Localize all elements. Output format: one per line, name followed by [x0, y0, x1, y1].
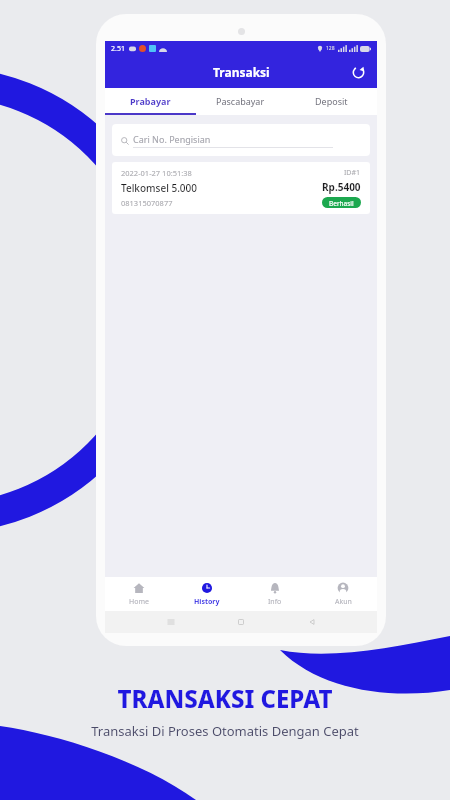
staticText: Telkomsel 5.000 [121, 181, 198, 195]
button[interactable]: Prabayar [105, 88, 195, 113]
button[interactable]: Refresh [347, 61, 369, 83]
staticText: Pascabayar [216, 95, 265, 107]
button[interactable]: 2022-01-27 10:51:38 [112, 162, 370, 214]
staticText: Home [129, 597, 149, 607]
button[interactable]: Deposit [286, 88, 377, 113]
button[interactable]: Info [241, 577, 309, 611]
staticText: ID#1 [344, 168, 361, 178]
button[interactable]: Cari No. Pengisian [112, 124, 370, 156]
staticText: TRANSAKSI CEPAT [117, 682, 333, 715]
button[interactable]: History [173, 577, 241, 611]
staticText: History [194, 597, 220, 607]
staticText: Rp.5400 [322, 180, 361, 194]
button[interactable]: Akun [309, 577, 377, 611]
staticText: 2022-01-27 10:51:38 [121, 168, 192, 178]
staticText: Deposit [315, 95, 348, 107]
staticText: 128 [326, 45, 335, 52]
staticText: Transaksi Di Proses Otomatis Dengan Cepa… [91, 722, 359, 740]
staticText: Berhasil [329, 199, 354, 206]
staticText: Transaksi [213, 64, 270, 80]
staticText: Akun [335, 597, 352, 607]
staticText: Info [268, 597, 282, 607]
staticText: 2.51 [111, 44, 125, 54]
button[interactable]: Pascabayar [195, 88, 286, 113]
staticText: Cari No. Pengisian [133, 133, 211, 145]
button[interactable]: Home [105, 577, 173, 611]
staticText: Prabayar [130, 95, 171, 107]
staticText: 081315070877 [121, 198, 173, 208]
